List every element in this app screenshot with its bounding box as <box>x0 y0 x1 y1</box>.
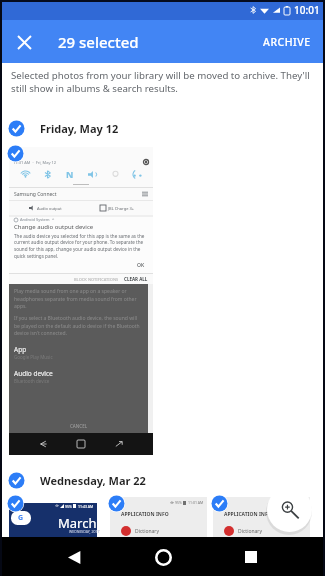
staticText: Wednesday, Mar 22 <box>40 473 146 488</box>
staticText: WEDNESDAY, 2017 <box>69 529 100 534</box>
button[interactable]: Wednesday, Mar 22 <box>0 469 325 491</box>
staticText: Google Play Music <box>14 354 53 360</box>
staticText: ^ <box>52 217 55 222</box>
button[interactable]: Close selection <box>11 29 37 55</box>
staticText: Dictionary <box>135 528 159 535</box>
staticText: Audio device <box>14 369 53 378</box>
button[interactable]: Home <box>148 542 178 572</box>
staticText: 11:01 AM <box>291 500 307 505</box>
staticText: The audio device you selected for this a… <box>14 233 145 260</box>
staticText: 95% <box>65 504 72 509</box>
staticText: 11:43 AM <box>78 504 94 509</box>
staticText: CANCEL <box>70 423 88 429</box>
staticText: Bluetooth device <box>14 378 50 384</box>
staticText: BLOCK NOTIFICATIONS <box>74 277 119 282</box>
staticText: Dictionary <box>238 528 262 535</box>
button[interactable]: Back <box>59 542 89 572</box>
staticText: If you select a Bluetooth audio device, … <box>14 315 143 336</box>
staticText: G <box>18 513 24 523</box>
staticText: March 22 <box>58 514 115 532</box>
staticText: APPLICATION INFO <box>224 511 272 518</box>
staticText: Friday, May 12 <box>40 121 119 136</box>
staticText: App <box>14 345 27 354</box>
staticText: CLEAR ALL <box>124 276 148 282</box>
staticText: 10:01 <box>294 3 320 17</box>
staticText: N <box>66 168 74 180</box>
staticText: Audio output <box>37 206 62 211</box>
staticText: 95% <box>278 500 285 505</box>
staticText: 11:31 AM · Fri, May 12 <box>13 160 57 165</box>
staticText: 29 selected <box>58 32 139 52</box>
staticText: OK <box>137 262 145 269</box>
staticText: Change audio output device <box>14 223 94 231</box>
staticText: Android System <box>20 217 50 222</box>
staticText: APPLICATION INFO <box>121 511 169 518</box>
staticText: Play media sound from one app on a speak… <box>14 288 143 309</box>
staticText: ARCHIVE <box>263 35 311 49</box>
staticText: Selected photos from your library will b… <box>11 69 319 95</box>
button[interactable]: ARCHIVE <box>249 27 325 57</box>
button[interactable]: Zoom in <box>267 487 312 532</box>
staticText: Samsung Connect <box>14 191 57 198</box>
staticText: 11:01 AM <box>188 500 204 505</box>
staticText: JBL Charge 3+ <box>108 206 135 211</box>
button[interactable]: Recent apps <box>236 542 266 572</box>
staticText: 95% <box>175 500 182 505</box>
button[interactable]: Friday, May 12 <box>0 117 325 139</box>
